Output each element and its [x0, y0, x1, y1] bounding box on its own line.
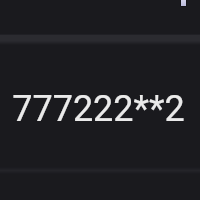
other: Battery	[180, 0, 187, 7]
staticText: 777222**2	[12, 88, 185, 130]
button[interactable]: 777222**2	[0, 35, 200, 169]
